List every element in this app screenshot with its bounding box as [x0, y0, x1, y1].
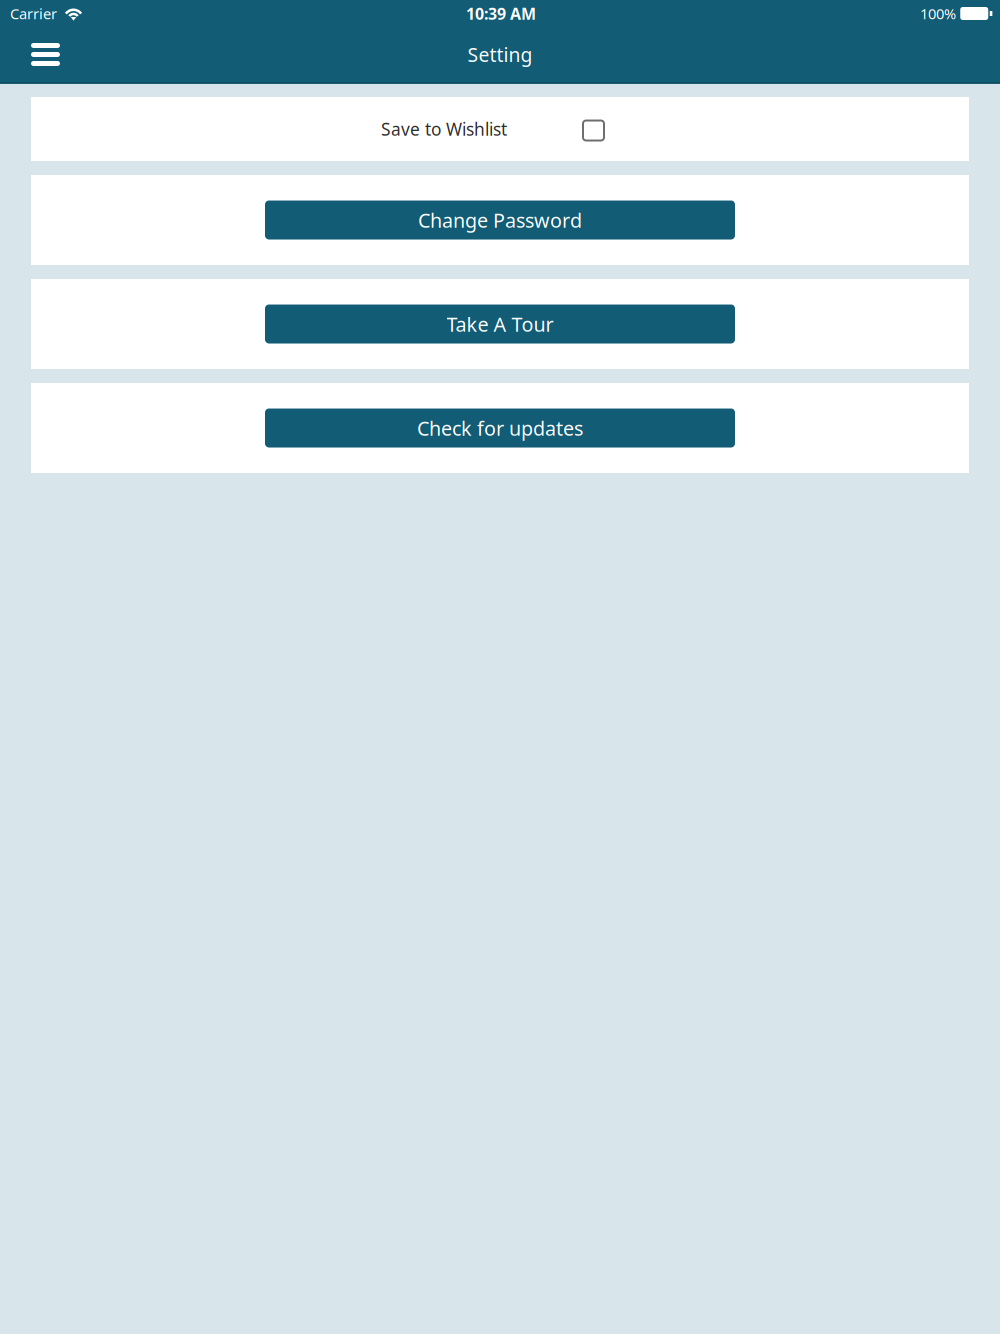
staticText: 10:39 AM	[466, 3, 536, 24]
button[interactable]: Menu	[0, 27, 76, 82]
staticText: Save to Wishlist	[381, 117, 507, 141]
button[interactable]: Change Password	[31, 175, 969, 265]
staticText: Take A Tour	[446, 311, 553, 337]
staticText: Check for updates	[417, 415, 583, 441]
button[interactable]: Take A Tour	[31, 279, 969, 369]
staticText: Change Password	[418, 207, 582, 233]
staticText: 100%	[920, 3, 956, 23]
staticText: Setting	[467, 41, 532, 68]
button[interactable]: Save to Wishlist	[31, 97, 969, 161]
staticText: Carrier	[10, 3, 57, 23]
button[interactable]: Check for updates	[31, 383, 969, 473]
